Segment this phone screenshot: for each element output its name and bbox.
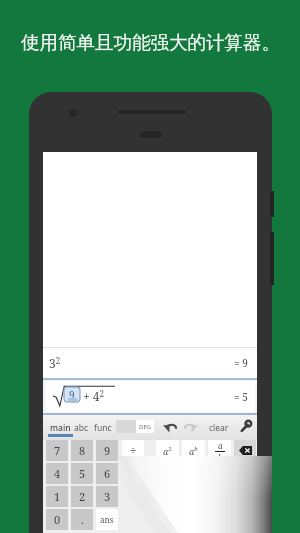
staticText: 2 xyxy=(79,489,86,504)
staticText: 1 xyxy=(54,489,61,504)
staticText: ans xyxy=(100,514,114,525)
staticText: . xyxy=(81,512,84,527)
button[interactable]: func xyxy=(94,422,112,434)
button[interactable]: 3 xyxy=(96,486,118,507)
button[interactable]: a xyxy=(208,440,231,461)
button[interactable]: 9 xyxy=(43,380,257,413)
button[interactable]: Backspace xyxy=(234,440,256,461)
button[interactable]: Redo xyxy=(185,423,198,433)
button[interactable]: 7 xyxy=(46,440,68,461)
staticText: + 42 xyxy=(83,388,105,404)
button[interactable]: 9 xyxy=(96,440,118,461)
button[interactable]: Settings xyxy=(240,421,251,432)
button[interactable]: Undo xyxy=(163,423,176,433)
button[interactable]: ÷ xyxy=(122,440,144,461)
staticText: a2 xyxy=(163,445,172,457)
button[interactable]: 32 xyxy=(43,348,257,378)
button[interactable]: ans xyxy=(96,509,118,530)
staticText: 8 xyxy=(79,443,86,458)
button[interactable]: clear xyxy=(209,422,229,434)
staticText: = 5 xyxy=(234,390,248,404)
staticText: b xyxy=(218,452,223,461)
staticText: a xyxy=(218,440,223,451)
staticText: ab xyxy=(189,445,198,457)
staticText: 7 xyxy=(54,443,61,458)
button[interactable]: 8 xyxy=(71,440,93,461)
staticText: 5 xyxy=(79,466,86,481)
button[interactable]: a2 xyxy=(156,440,179,461)
button[interactable]: DEG xyxy=(116,420,154,433)
staticText: = 9 xyxy=(234,356,248,370)
button[interactable]: 0 xyxy=(46,509,68,530)
button[interactable]: 5 xyxy=(71,463,93,484)
button[interactable]: . xyxy=(71,509,93,530)
staticText: 3 xyxy=(104,489,111,504)
button[interactable]: 4 xyxy=(46,463,68,484)
button[interactable]: 6 xyxy=(96,463,118,484)
staticText: 9 xyxy=(69,388,75,402)
button[interactable]: ab xyxy=(182,440,205,461)
staticText: 使用简单且功能强大的计算器。 xyxy=(21,31,280,54)
button[interactable]: 1 xyxy=(46,486,68,507)
staticText: 0 xyxy=(54,512,61,527)
button[interactable]: abc xyxy=(74,422,89,434)
staticText: DEG xyxy=(139,423,152,431)
staticText: 9 xyxy=(104,443,111,458)
staticText: 4 xyxy=(54,466,61,481)
button[interactable]: 2 xyxy=(71,486,93,507)
staticText: main xyxy=(50,422,71,434)
button[interactable]: main xyxy=(48,415,73,440)
staticText: 6 xyxy=(104,466,111,481)
staticText: ÷ xyxy=(130,443,137,458)
staticText: 32 xyxy=(49,355,61,372)
